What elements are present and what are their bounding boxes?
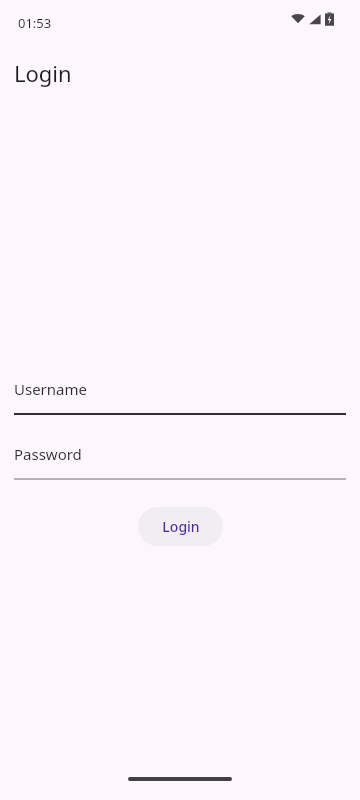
button[interactable]: Password: [14, 443, 346, 465]
button[interactable]: Username: [14, 378, 346, 400]
staticText: Password: [14, 444, 82, 464]
staticText: 01:53: [18, 14, 52, 32]
staticText: Username: [14, 379, 87, 399]
staticText: Login: [162, 517, 200, 536]
button[interactable]: Login: [138, 507, 223, 546]
staticText: Login: [14, 58, 72, 88]
